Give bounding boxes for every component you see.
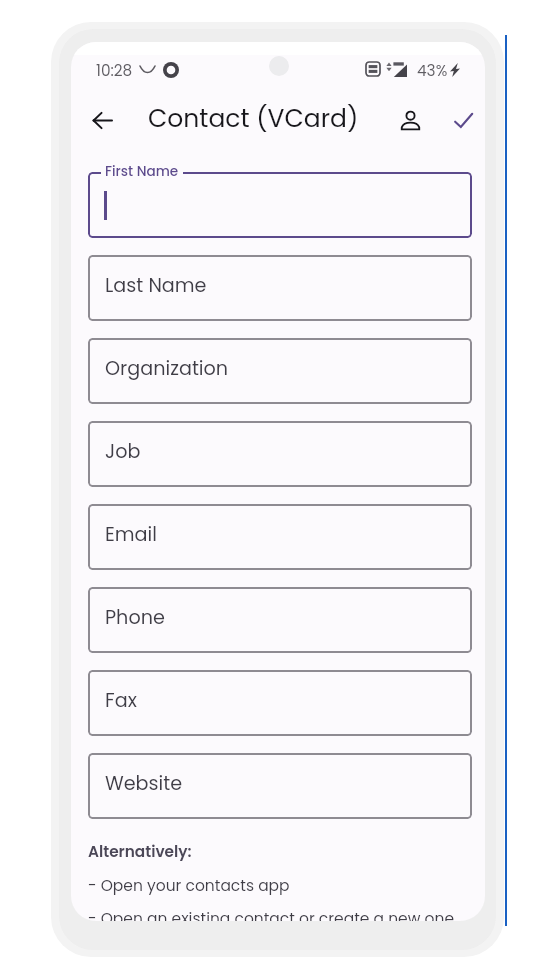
staticText: Last Name <box>105 272 207 299</box>
staticText: Contact (VCard) <box>148 101 359 136</box>
staticText: Alternatively: <box>88 841 192 862</box>
staticText: Job <box>105 438 141 465</box>
staticText: First Name <box>105 162 179 181</box>
staticText: Fax <box>105 687 137 714</box>
staticText: 10:28 <box>96 60 133 81</box>
button[interactable]: Email <box>88 504 472 570</box>
staticText: 43% <box>417 60 448 81</box>
staticText: - Open your contacts app <box>88 875 290 897</box>
button[interactable]: Fax <box>88 670 472 736</box>
button[interactable] <box>88 172 472 238</box>
button[interactable]: Pick contact <box>393 103 428 138</box>
button[interactable]: Job <box>88 421 472 487</box>
staticText: Website <box>105 770 183 797</box>
staticText: - Open an existing contact or create a n… <box>88 908 454 921</box>
button[interactable]: Last Name <box>88 255 472 321</box>
button[interactable]: Website <box>88 753 472 819</box>
button[interactable]: Back <box>85 103 119 137</box>
staticText: Organization <box>105 355 229 382</box>
staticText: Phone <box>105 604 165 631</box>
button[interactable]: Phone <box>88 587 472 653</box>
button[interactable]: Organization <box>88 338 472 404</box>
staticText: Email <box>105 521 158 548</box>
button[interactable]: Save contact <box>445 103 480 138</box>
